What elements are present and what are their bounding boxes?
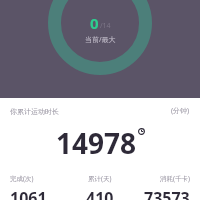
staticText: 累计(天): [88, 174, 112, 183]
staticText: 73573: [144, 187, 190, 200]
button[interactable]: 累计(天): [70, 174, 130, 200]
staticText: 1061: [10, 187, 47, 200]
staticText: 410: [86, 187, 114, 200]
staticText: 消耗(千卡): [160, 174, 190, 183]
button[interactable]: 完成(次): [10, 174, 70, 200]
staticText: 完成(次): [10, 174, 34, 183]
staticText: 你累计运动时长: [10, 107, 59, 116]
staticText: 当前/最大: [85, 35, 116, 45]
staticText: 0: [90, 13, 99, 33]
staticText: 14978: [56, 124, 137, 162]
button[interactable]: Current versus maximum progress ring: [0, 0, 200, 98]
button[interactable]: 消耗(千卡): [130, 174, 190, 200]
staticText: (分钟): [171, 106, 190, 116]
staticText: /14: [100, 21, 111, 31]
